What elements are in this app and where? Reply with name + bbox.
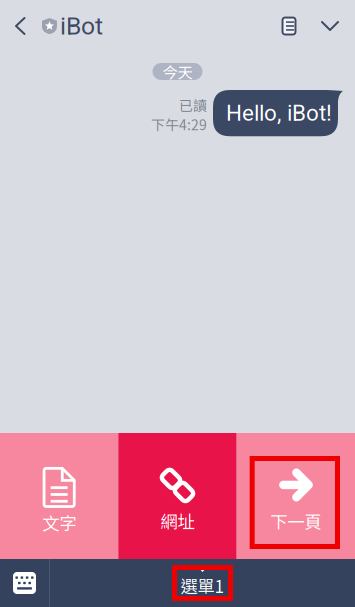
button[interactable]: 網址 bbox=[118, 433, 237, 559]
staticText: 下一頁 bbox=[270, 508, 321, 534]
button[interactable]: Notes bbox=[270, 4, 308, 48]
staticText: 已讀 bbox=[179, 95, 207, 115]
button[interactable]: 文字 bbox=[0, 433, 118, 559]
staticText: 選單1 bbox=[180, 573, 224, 598]
staticText: 文字 bbox=[42, 510, 76, 535]
button[interactable]: 下一頁 bbox=[237, 433, 355, 559]
button[interactable]: Back bbox=[0, 4, 42, 48]
button[interactable]: Keyboard bbox=[0, 559, 49, 607]
staticText: 下午4:29 bbox=[151, 114, 207, 134]
button[interactable]: Expand menu bbox=[308, 3, 352, 49]
staticText: 今天 bbox=[162, 60, 192, 83]
staticText: Hello, iBot! bbox=[226, 100, 332, 126]
button[interactable]: 選單1 bbox=[50, 559, 355, 607]
staticText: iBot bbox=[60, 11, 103, 40]
staticText: 網址 bbox=[160, 508, 194, 534]
